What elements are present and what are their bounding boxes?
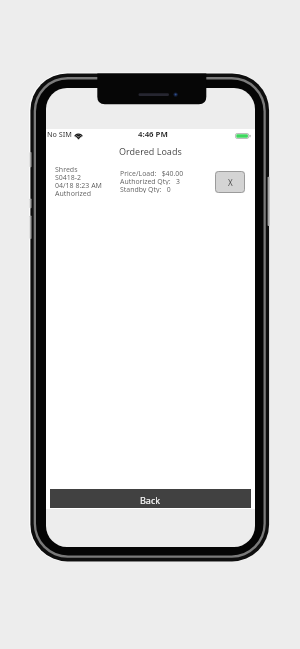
staticText: 04/18 8:23 AM	[55, 181, 102, 189]
staticText: Standby Qty: 0	[120, 185, 171, 193]
staticText: Price/Load: $40.00	[120, 169, 184, 177]
staticText: S0418-2	[55, 173, 82, 181]
staticText: Shreds	[55, 165, 78, 173]
staticText: Ordered Loads	[119, 145, 182, 157]
button[interactable]: Back	[50, 489, 251, 508]
staticText: Authorized	[55, 189, 92, 197]
staticText: No SIM	[47, 129, 72, 139]
button[interactable]: Cancel load	[215, 171, 245, 193]
staticText: X	[228, 177, 233, 188]
staticText: 4:46 PM	[138, 129, 168, 140]
staticText: Back	[140, 494, 161, 506]
staticText: Authorized Qty: 3	[120, 177, 180, 185]
